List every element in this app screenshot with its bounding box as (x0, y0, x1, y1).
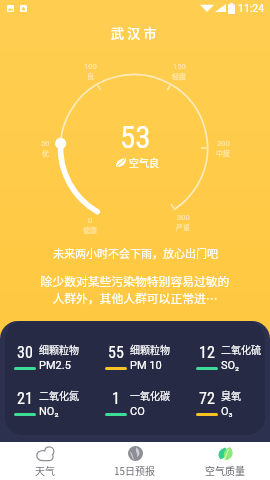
staticText: 中度 (216, 148, 230, 158)
staticText: 严重 (176, 222, 190, 232)
staticText: 100 (84, 62, 97, 71)
staticText: 空气质量 (205, 463, 245, 477)
staticText: 0 (88, 216, 93, 225)
button[interactable]: 30 (5, 321, 265, 435)
staticText: 细颗粒物 (39, 342, 79, 356)
staticText: 50 (41, 139, 50, 148)
staticText: 53 (120, 119, 151, 155)
staticText: 21 (17, 389, 33, 408)
staticText: 健康 (83, 225, 97, 235)
button[interactable]: 空气质量 (180, 442, 270, 480)
staticText: 11:24 (238, 2, 265, 14)
staticText: 二氧化硫 (221, 342, 261, 356)
staticText: 空气良 (129, 155, 159, 169)
staticText: 武汉市 (111, 23, 160, 42)
staticText: 200 (217, 139, 230, 148)
staticText: 轻度 (172, 71, 186, 81)
staticText: O₃ (221, 405, 233, 418)
staticText: 15日预报 (114, 463, 156, 477)
staticText: CO (130, 405, 145, 418)
staticText: PM 10 (130, 359, 162, 372)
staticText: 细颗粒物 (130, 342, 170, 356)
staticText: 12 (199, 343, 215, 362)
staticText: 一氧化碳 (130, 388, 170, 402)
staticText: 臭氧 (221, 388, 241, 402)
staticText: 未来两小时不会下雨，放心出门吧 (53, 245, 218, 261)
staticText: 30 (17, 343, 33, 362)
staticText: 良 (87, 71, 94, 81)
staticText: 300 (177, 213, 190, 222)
staticText: 除少数对某些污染物特别容易过敏的人群外，其他人群可以正常进… (40, 272, 230, 306)
staticText: NO₂ (39, 405, 59, 418)
staticText: 优 (42, 148, 49, 158)
button[interactable]: 天气 (0, 442, 90, 480)
staticText: 72 (199, 389, 215, 408)
staticText: SO₂ (221, 359, 240, 372)
staticText: 二氧化氮 (39, 388, 79, 402)
staticText: 55 (108, 343, 124, 362)
staticText: 1 (112, 389, 120, 408)
staticText: 150 (173, 62, 186, 71)
staticText: PM2.5 (39, 359, 71, 372)
button[interactable]: 15日预报 (90, 442, 180, 480)
staticText: 天气 (35, 463, 55, 477)
